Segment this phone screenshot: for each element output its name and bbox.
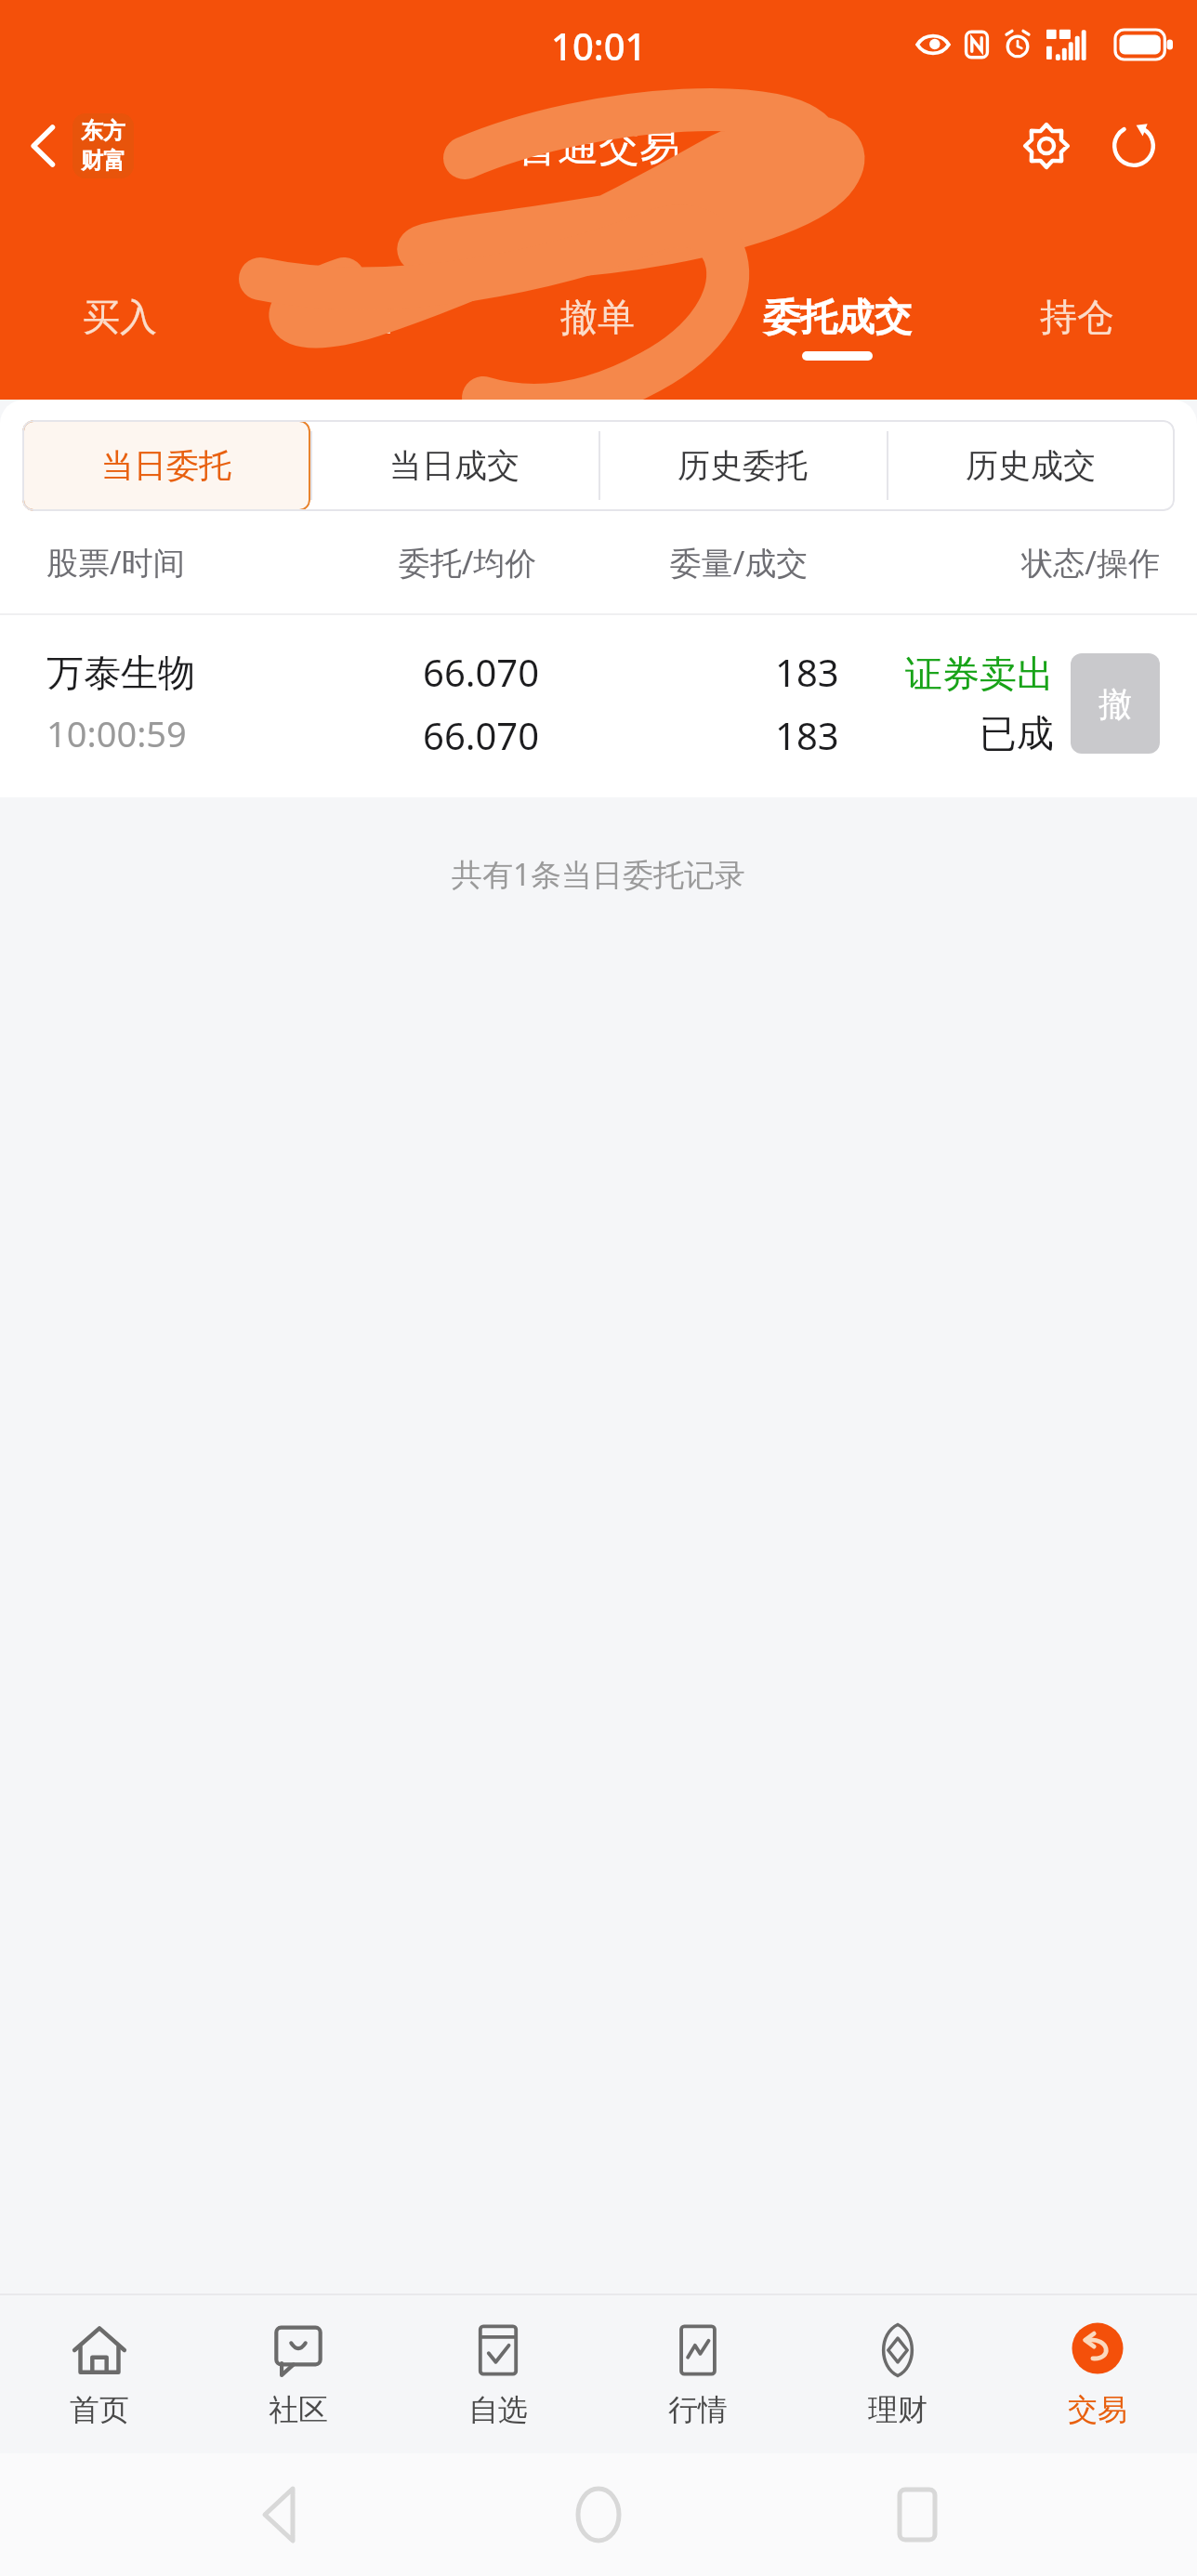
staticText: 自选 (468, 2391, 528, 2428)
button[interactable]: 万泰生物 (0, 615, 1197, 792)
button[interactable]: 交易 (997, 2295, 1197, 2453)
staticText: 共有1条当日委托记录 (0, 853, 1197, 895)
button[interactable]: 当日委托 (22, 420, 310, 511)
staticText: 当日成交 (389, 445, 520, 486)
staticText: 委托成交 (763, 294, 912, 340)
staticText: 10:00:59 (46, 709, 187, 757)
staticText: 委量/成交 (603, 541, 875, 584)
button[interactable]: 撤单 (478, 279, 717, 390)
staticText: 首页 (70, 2391, 129, 2428)
button[interactable]: 买入 (0, 279, 239, 390)
staticText: 买入 (83, 294, 157, 340)
button[interactable]: 理财 (797, 2295, 997, 2453)
staticText: 普通交易 (517, 121, 680, 172)
button[interactable]: Back (243, 2470, 317, 2559)
staticText: 撤 (1098, 683, 1132, 725)
button[interactable]: 当日成交 (310, 420, 598, 511)
staticText: 行情 (668, 2391, 728, 2428)
staticText: 财富 (81, 147, 125, 175)
button[interactable]: 历史成交 (887, 420, 1175, 511)
staticText: 撤单 (560, 294, 635, 340)
staticText: 交易 (1068, 2391, 1127, 2428)
button[interactable]: 自选 (398, 2295, 598, 2453)
staticText: 66.070 (423, 647, 540, 697)
staticText: 66.070 (423, 710, 540, 760)
button[interactable]: 委托成交 (717, 279, 957, 390)
staticText: 历史委托 (677, 445, 808, 486)
button[interactable]: 持仓 (957, 279, 1197, 390)
staticText: 历史成交 (966, 445, 1096, 486)
button[interactable]: 卖出 (239, 279, 478, 390)
staticText: 状态/操作 (875, 541, 1160, 584)
button[interactable]: Refresh (1102, 114, 1165, 177)
staticText: 10:01 (551, 20, 647, 71)
staticText: 万泰生物 (46, 650, 195, 696)
button[interactable]: Back (19, 106, 143, 186)
staticText: 东方 (81, 117, 125, 145)
button[interactable]: Settings (1015, 114, 1078, 177)
button[interactable]: 社区 (199, 2295, 398, 2453)
staticText: 183 (775, 647, 839, 697)
staticText: 已成 (980, 710, 1054, 756)
staticText: 股票/时间 (46, 541, 332, 584)
button[interactable]: 历史委托 (598, 420, 887, 511)
button[interactable]: 首页 (0, 2295, 199, 2453)
staticText: 理财 (868, 2391, 927, 2428)
button[interactable]: 撤 (1071, 653, 1160, 754)
button[interactable]: Home (559, 2470, 638, 2559)
staticText: 委托/均价 (332, 541, 603, 584)
staticText: 卖出 (322, 294, 396, 340)
staticText: 证券卖出 (905, 651, 1054, 697)
button[interactable]: 行情 (598, 2295, 797, 2453)
staticText: 社区 (269, 2391, 328, 2428)
staticText: 持仓 (1040, 294, 1114, 340)
button[interactable]: Recents (881, 2471, 954, 2558)
staticText: 当日委托 (101, 445, 231, 486)
staticText: 183 (775, 710, 839, 760)
